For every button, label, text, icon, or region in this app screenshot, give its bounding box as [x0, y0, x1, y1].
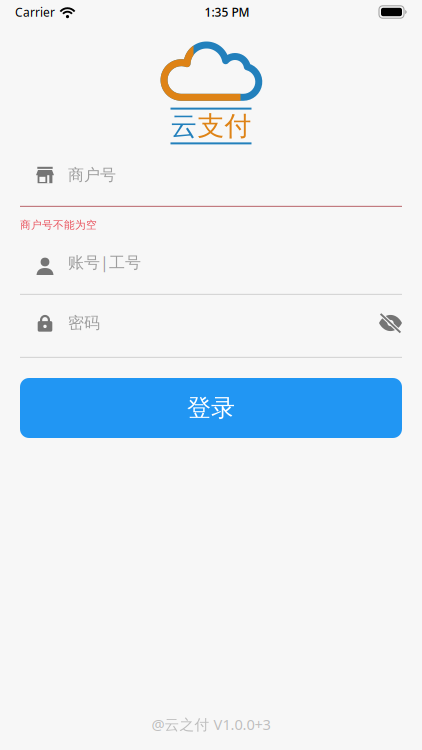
staticText: 账号|工号: [68, 251, 141, 273]
staticText: 登录: [187, 393, 235, 423]
staticText: 1:35 PM: [204, 4, 249, 20]
button[interactable]: 登录: [0, 378, 422, 438]
staticText: 商户号不能为空: [20, 218, 97, 231]
staticText: 云: [170, 110, 197, 142]
button[interactable]: 账号|工号: [0, 245, 422, 295]
staticText: 支付: [197, 110, 251, 142]
button[interactable]: 密码: [0, 306, 422, 358]
button[interactable]: 商户号: [0, 158, 422, 207]
staticText: 商户号: [68, 165, 116, 185]
staticText: 密码: [68, 313, 100, 333]
staticText: @云之付 V1.0.0+3: [151, 714, 270, 734]
staticText: Carrier: [15, 4, 55, 20]
